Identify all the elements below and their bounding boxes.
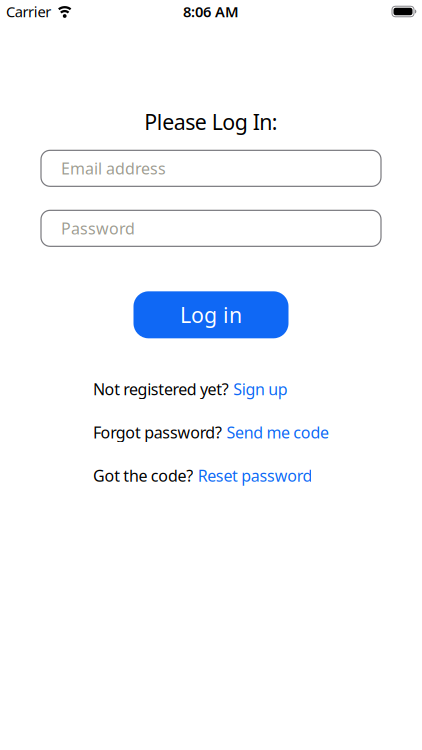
staticText: Forgot password? xyxy=(93,422,222,443)
button[interactable]: Log in xyxy=(133,291,288,338)
staticText: Not registered yet? xyxy=(93,378,229,399)
textField[interactable]: Password xyxy=(61,218,361,239)
staticText: Got the code? xyxy=(93,465,193,486)
button[interactable]: Sign up xyxy=(233,378,288,399)
staticText: Password xyxy=(61,218,135,239)
staticText: Please Log In: xyxy=(144,107,278,136)
staticText: Sign up xyxy=(233,378,288,399)
button[interactable]: Send me code xyxy=(226,422,329,443)
staticText: 8:06 AM xyxy=(183,2,239,21)
staticText: Send me code xyxy=(226,422,329,443)
staticText: Reset password xyxy=(198,465,312,486)
button[interactable]: Reset password xyxy=(198,465,312,486)
staticText: Carrier xyxy=(6,2,51,21)
staticText: Log in xyxy=(180,301,242,329)
textField[interactable]: Email address xyxy=(61,158,361,179)
staticText: Email address xyxy=(61,158,166,179)
